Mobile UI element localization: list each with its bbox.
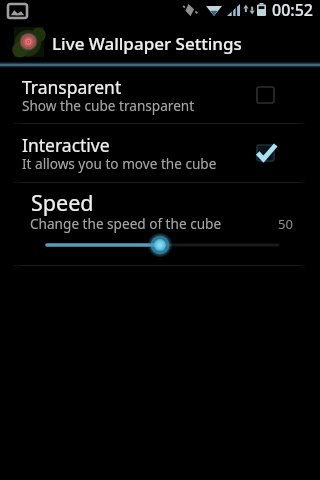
button[interactable]: Interactive: [0, 125, 320, 181]
staticText: 50: [278, 215, 293, 233]
staticText: Show the cube transparent: [22, 96, 195, 115]
staticText: 00:52: [272, 0, 313, 18]
staticText: It allows you to move the cube: [22, 154, 217, 173]
staticText: Speed: [31, 188, 94, 217]
button[interactable]: Live Wallpaper Settings: [0, 19, 320, 62]
other: Screenshot captured: [8, 4, 27, 18]
button[interactable]: Transparent: [0, 67, 320, 123]
button[interactable]: Speed: [0, 186, 320, 262]
staticText: Change the speed of the cube: [30, 214, 222, 233]
staticText: Transparent: [22, 75, 122, 99]
staticText: Interactive: [22, 133, 110, 157]
staticText: Live Wallpaper Settings: [52, 32, 242, 55]
